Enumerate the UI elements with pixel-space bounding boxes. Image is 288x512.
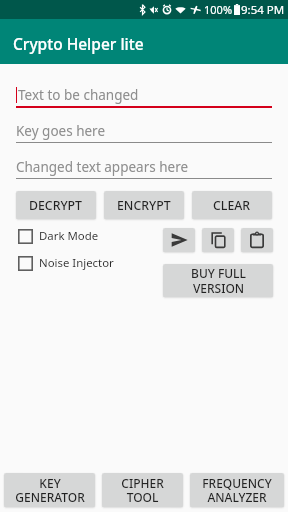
- button[interactable]: CIPHER TOOL: [102, 473, 183, 507]
- button[interactable]: DECRYPT: [16, 191, 96, 219]
- staticText: Crypto Helper lite: [13, 33, 144, 54]
- staticText: Key goes here: [16, 122, 106, 140]
- staticText: 100%: [204, 2, 233, 17]
- button[interactable]: KEY GENERATOR: [4, 473, 95, 507]
- staticText: FREQUENCY ANALYZER: [202, 475, 272, 506]
- staticText: KEY GENERATOR: [15, 475, 85, 506]
- staticText: Text to be changed: [18, 86, 139, 104]
- button[interactable]: CLEAR: [192, 191, 272, 219]
- button[interactable]: Copy: [202, 228, 234, 252]
- staticText: CIPHER TOOL: [121, 475, 164, 506]
- staticText: Noise Injector: [39, 255, 114, 271]
- staticText: Changed text appears here: [16, 158, 189, 176]
- button[interactable]: Paste: [241, 228, 273, 252]
- staticText: CLEAR: [213, 197, 251, 214]
- staticText: 9:54 PM: [241, 2, 285, 18]
- staticText: Dark Mode: [39, 228, 99, 244]
- button[interactable]: FREQUENCY ANALYZER: [190, 473, 284, 507]
- staticText: BUY FULL VERSION: [191, 265, 246, 296]
- button[interactable]: Send: [163, 228, 195, 252]
- button[interactable]: BUY FULL VERSION: [163, 264, 273, 297]
- button[interactable]: ENCRYPT: [104, 191, 184, 219]
- button[interactable]: Dark Mode: [18, 228, 99, 244]
- staticText: DECRYPT: [29, 197, 83, 214]
- button[interactable]: Noise Injector: [18, 255, 114, 271]
- staticText: ENCRYPT: [117, 197, 171, 214]
